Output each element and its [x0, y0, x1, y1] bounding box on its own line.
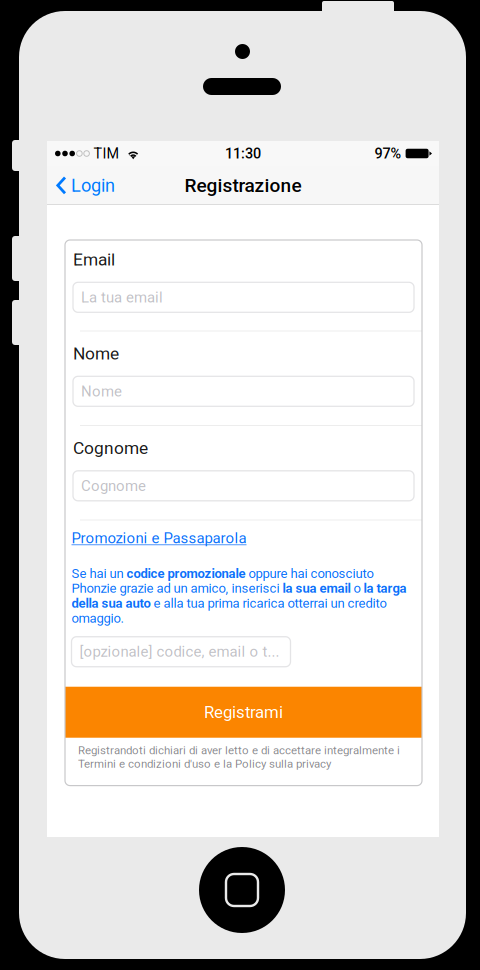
staticText: Nome: [73, 343, 119, 364]
button[interactable]: Registrami: [65, 687, 422, 738]
staticText: TIM: [93, 145, 119, 162]
button[interactable]: Promozioni e Passaparola: [71, 529, 415, 547]
staticText: Cognome: [81, 477, 146, 495]
staticText: Promozioni e Passaparola: [71, 529, 246, 547]
staticText: Cognome: [73, 438, 148, 458]
staticText: Login: [71, 175, 115, 196]
staticText: La tua email: [81, 289, 163, 306]
staticText: Registrami: [204, 702, 283, 722]
staticText: Email: [73, 249, 115, 270]
button[interactable]: Login: [47, 168, 125, 203]
staticText: Registrandoti dichiari di aver letto e d…: [78, 744, 400, 771]
staticText: 97%: [375, 145, 402, 162]
staticText: [opzionale] codice, email o t...: [79, 643, 279, 660]
staticText: Se hai un codice promozionale oppure hai…: [71, 566, 406, 626]
staticText: Registrazione: [184, 174, 301, 197]
staticText: Nome: [81, 383, 122, 400]
staticText: 11:30: [225, 145, 261, 162]
